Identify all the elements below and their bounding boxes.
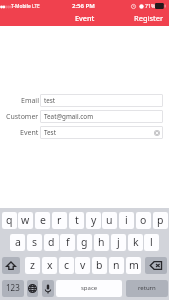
button[interactable]: k bbox=[128, 234, 143, 251]
button[interactable]: y bbox=[86, 212, 101, 229]
staticText: f bbox=[66, 235, 70, 249]
staticText: q bbox=[6, 213, 13, 227]
button[interactable]: Dictate bbox=[42, 280, 54, 297]
staticText: Event bbox=[20, 128, 39, 138]
staticText: t bbox=[75, 213, 79, 227]
button[interactable]: Shift bbox=[2, 257, 20, 274]
button[interactable]: Backspace bbox=[145, 257, 167, 274]
staticText: w bbox=[21, 213, 30, 227]
button[interactable]: b bbox=[92, 257, 107, 274]
button[interactable]: u bbox=[102, 212, 117, 229]
staticText: j bbox=[117, 235, 120, 249]
staticText: Event bbox=[75, 13, 95, 23]
staticText: Register bbox=[134, 13, 164, 23]
staticText: y bbox=[91, 213, 97, 227]
staticText: Test bbox=[44, 128, 56, 137]
button[interactable]: s bbox=[27, 234, 42, 251]
staticText: l bbox=[150, 235, 153, 249]
button[interactable]: q bbox=[2, 212, 17, 229]
button[interactable]: z bbox=[25, 257, 40, 274]
button[interactable]: r bbox=[52, 212, 67, 229]
staticText: h bbox=[98, 235, 105, 249]
staticText: d bbox=[48, 235, 55, 249]
staticText: test bbox=[44, 96, 56, 105]
button[interactable]: Switch keyboard bbox=[27, 280, 38, 297]
staticText: 2:56 PM bbox=[72, 2, 95, 10]
staticText: space bbox=[81, 284, 98, 292]
staticText: s bbox=[32, 235, 38, 249]
staticText: g bbox=[81, 235, 88, 249]
button[interactable]: Teat@gmail.com bbox=[40, 110, 163, 123]
staticText: z bbox=[30, 258, 35, 272]
button[interactable]: space bbox=[56, 280, 122, 297]
button[interactable]: n bbox=[109, 257, 124, 274]
staticText: c bbox=[64, 258, 70, 272]
button[interactable]: c bbox=[59, 257, 74, 274]
staticText: 123 bbox=[6, 282, 20, 293]
staticText: k bbox=[133, 235, 139, 249]
button[interactable]: t bbox=[69, 212, 84, 229]
staticText: Email bbox=[21, 96, 39, 106]
button[interactable]: f bbox=[60, 234, 75, 251]
button[interactable]: a bbox=[10, 234, 25, 251]
button[interactable]: h bbox=[94, 234, 109, 251]
button[interactable]: e bbox=[35, 212, 50, 229]
button[interactable]: o bbox=[136, 212, 151, 229]
staticText: e bbox=[40, 213, 46, 227]
staticText: i bbox=[125, 213, 128, 227]
button[interactable]: m bbox=[126, 257, 141, 274]
button[interactable]: w bbox=[18, 212, 33, 229]
button[interactable]: test bbox=[40, 94, 163, 107]
button[interactable]: Numbers and symbols bbox=[2, 280, 24, 297]
staticText: a bbox=[15, 235, 21, 249]
button[interactable]: return bbox=[126, 280, 168, 297]
button[interactable]: x bbox=[42, 257, 57, 274]
button[interactable]: p bbox=[153, 212, 168, 229]
button[interactable]: j bbox=[111, 234, 126, 251]
button[interactable]: g bbox=[77, 234, 92, 251]
other: Clear bbox=[154, 130, 160, 136]
staticText: v bbox=[80, 258, 86, 272]
staticText: m bbox=[129, 258, 139, 272]
staticText: x bbox=[47, 258, 53, 272]
staticText: b bbox=[96, 258, 103, 272]
staticText: n bbox=[113, 258, 120, 272]
staticText: u bbox=[106, 213, 113, 227]
staticText: 71% bbox=[145, 2, 156, 9]
staticText: Customer bbox=[6, 112, 39, 122]
button[interactable]: Register bbox=[128, 13, 169, 26]
button[interactable]: v bbox=[75, 257, 90, 274]
staticText: Teat@gmail.com bbox=[44, 112, 94, 121]
staticText: LTE bbox=[32, 3, 40, 10]
button[interactable]: d bbox=[44, 234, 59, 251]
button[interactable]: i bbox=[119, 212, 134, 229]
button[interactable]: Test bbox=[40, 126, 163, 139]
staticText: r bbox=[57, 213, 62, 227]
staticText: p bbox=[157, 213, 164, 227]
button[interactable]: l bbox=[144, 234, 159, 251]
staticText: o bbox=[140, 213, 147, 227]
staticText: return bbox=[138, 284, 156, 292]
staticText: T-Mobile bbox=[11, 3, 31, 10]
